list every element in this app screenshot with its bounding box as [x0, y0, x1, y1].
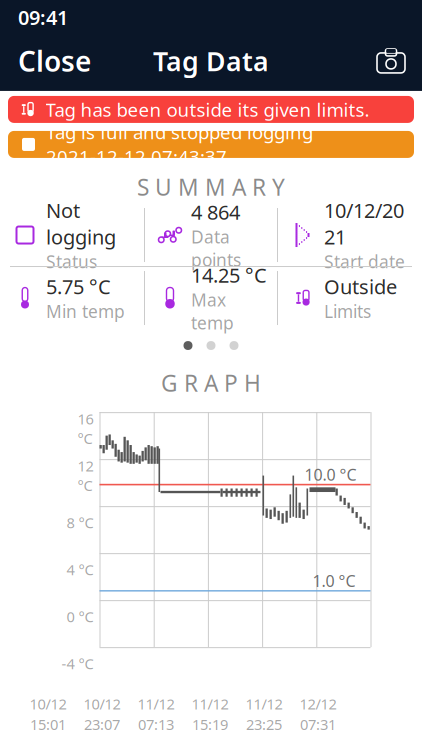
staticText: Outside — [324, 273, 397, 300]
staticText: Tag is full and stopped logging 2021-12-… — [46, 120, 318, 169]
staticText: 12 °C — [77, 456, 93, 495]
staticText: 11/12 — [137, 694, 174, 714]
staticText: 16 °C — [77, 409, 93, 448]
staticText: Limits — [324, 300, 371, 323]
staticText: Data points — [191, 225, 241, 271]
staticText: 10/12 — [83, 694, 120, 714]
button[interactable]: Close — [0, 36, 109, 85]
staticText: 15:19 — [192, 715, 228, 734]
staticText: 07:31 — [300, 715, 336, 734]
button[interactable]: Camera — [360, 41, 422, 81]
staticText: Min temp — [46, 300, 125, 323]
staticText: S U M M A R Y — [137, 172, 285, 202]
staticText: 23:25 — [246, 715, 282, 734]
staticText: 4 °C — [66, 560, 93, 579]
staticText: 10/12 — [29, 694, 66, 714]
staticText: Start date — [324, 250, 405, 273]
staticText: G R A P H — [161, 368, 261, 398]
staticText: 23:07 — [84, 715, 120, 734]
button[interactable]: Tag has been outside its given limits. — [8, 96, 414, 123]
staticText: Status — [46, 250, 97, 273]
staticText: 10/12/2021 — [324, 197, 404, 250]
staticText: 1.0 °C — [312, 570, 355, 591]
staticText: Close — [18, 42, 91, 79]
staticText: 5.75 °C — [46, 273, 111, 300]
button[interactable]: Tag is full and stopped logging 2021-12-… — [8, 131, 414, 158]
staticText: -4 °C — [61, 654, 93, 673]
staticText: 07:13 — [138, 715, 174, 734]
staticText: Tag Data — [153, 43, 269, 79]
staticText: Not logging — [46, 197, 116, 250]
staticText: 10.0 °C — [304, 464, 356, 485]
staticText: 09:41 — [18, 4, 68, 30]
staticText: 11/12 — [191, 694, 228, 714]
staticText: 12/12 — [299, 694, 336, 714]
staticText: Max temp — [191, 288, 234, 334]
staticText: 15:01 — [30, 715, 66, 734]
staticText: Tag has been outside its given limits. — [46, 97, 370, 122]
staticText: 8 °C — [66, 513, 93, 532]
staticText: 4 864 — [191, 199, 240, 225]
staticText: 14.25 °C — [191, 262, 267, 288]
staticText: 0 °C — [66, 607, 93, 626]
staticText: 11/12 — [245, 694, 282, 714]
